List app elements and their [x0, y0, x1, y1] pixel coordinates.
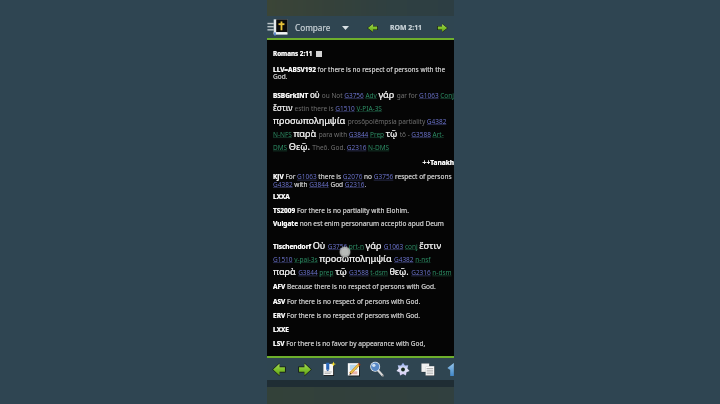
- button[interactable]: Bookmarks: [321, 361, 337, 378]
- button[interactable]: Copy: [420, 361, 436, 378]
- button[interactable]: Previous chapter: [271, 361, 287, 378]
- button[interactable]: ++Tanakh: [273, 158, 454, 167]
- button[interactable]: Notes: [346, 361, 362, 378]
- button[interactable]: BSBGrkINT οὐ ou Not G3756 Adv γάρ gar fo…: [273, 88, 454, 153]
- button[interactable]: Next verse: [434, 21, 450, 34]
- button[interactable]: Choose view: [339, 22, 351, 33]
- button[interactable]: LLV=ABSV192 for there is no respect of p…: [273, 65, 454, 81]
- button[interactable]: Compare: [295, 16, 331, 38]
- button[interactable]: Menu: [267, 18, 288, 37]
- button[interactable]: Share: [445, 361, 461, 378]
- button[interactable]: TS2009 For there is no partiality with E…: [273, 206, 454, 215]
- button[interactable]: LXXA: [273, 192, 454, 201]
- button[interactable]: ROM 2:11: [390, 16, 423, 38]
- button[interactable]: LSV For there is no favor by appearance …: [273, 339, 454, 348]
- button[interactable]: Next chapter: [297, 361, 313, 378]
- button[interactable]: Search: [369, 361, 385, 378]
- staticText: ROM 2:11: [390, 23, 423, 32]
- button[interactable]: ERV For there is no respect of persons w…: [273, 311, 454, 320]
- button[interactable]: ASV For there is no respect of persons w…: [273, 297, 454, 306]
- button[interactable]: LXXE: [273, 325, 454, 334]
- button[interactable]: Romans 2:11: [273, 49, 322, 58]
- button[interactable]: Settings: [395, 361, 411, 378]
- button[interactable]: Tischendorf Οὐ G3756 prt-n γάρ G1063 con…: [273, 239, 454, 278]
- staticText: Romans 2:11: [273, 49, 313, 58]
- staticText: Compare: [295, 22, 331, 33]
- button[interactable]: Previous verse: [364, 21, 380, 34]
- button[interactable]: Vulgate non est enim personarum acceptio…: [273, 219, 454, 228]
- button[interactable]: KJV For G1063 there is G2076 no G3756 re…: [273, 172, 454, 189]
- button[interactable]: AFV Because there is no respect of perso…: [273, 282, 454, 291]
